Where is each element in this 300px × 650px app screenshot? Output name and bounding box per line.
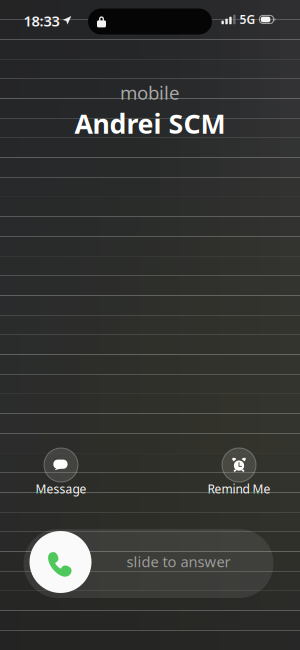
staticText: mobile bbox=[120, 80, 180, 105]
staticText: Remind Me bbox=[207, 481, 270, 497]
button[interactable]: Remind Me bbox=[187, 448, 291, 500]
staticText: Andrei SCM bbox=[74, 106, 225, 141]
staticText: Message bbox=[35, 481, 86, 497]
button[interactable]: Message bbox=[9, 448, 113, 500]
staticText: 5G bbox=[239, 11, 255, 27]
staticText: slide to answer bbox=[126, 552, 230, 571]
staticText: 18:33 bbox=[23, 11, 59, 30]
button[interactable]: Answer bbox=[29, 531, 91, 593]
